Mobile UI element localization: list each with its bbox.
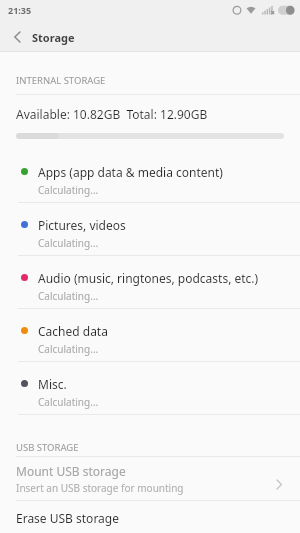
button[interactable]: Mount USB storage <box>0 457 300 500</box>
staticText: Mount USB storage <box>16 463 126 479</box>
button[interactable]: Pictures, videos <box>0 203 300 256</box>
staticText: Insert an USB storage for mounting <box>16 481 184 495</box>
staticText: Erase USB storage <box>16 510 119 526</box>
button[interactable]: Apps (app data & media content) <box>0 150 300 203</box>
staticText: Cached data <box>38 323 108 339</box>
staticText: Calculating... <box>38 236 99 250</box>
staticText: USB STORAGE <box>16 441 79 454</box>
staticText: Calculating... <box>38 342 99 356</box>
staticText: Calculating... <box>38 183 99 197</box>
staticText: Available: 10.82GB Total: 12.90GB <box>16 106 208 122</box>
staticText: INTERNAL STORAGE <box>16 74 106 87</box>
staticText: 21:35 <box>8 4 32 16</box>
button[interactable]: Cached data <box>0 309 300 362</box>
button[interactable]: Erase USB storage <box>0 501 300 533</box>
staticText: Pictures, videos <box>38 217 126 233</box>
staticText: Audio (music, ringtones, podcasts, etc.) <box>38 270 259 286</box>
staticText: Storage <box>32 30 75 45</box>
staticText: Calculating... <box>38 395 99 409</box>
button[interactable]: Misc. <box>0 362 300 415</box>
staticText: Calculating... <box>38 289 99 303</box>
staticText: Misc. <box>38 376 67 392</box>
button[interactable]: Storage <box>0 22 75 52</box>
staticText: Apps (app data & media content) <box>38 164 223 180</box>
button[interactable]: Audio (music, ringtones, podcasts, etc.) <box>0 256 300 309</box>
